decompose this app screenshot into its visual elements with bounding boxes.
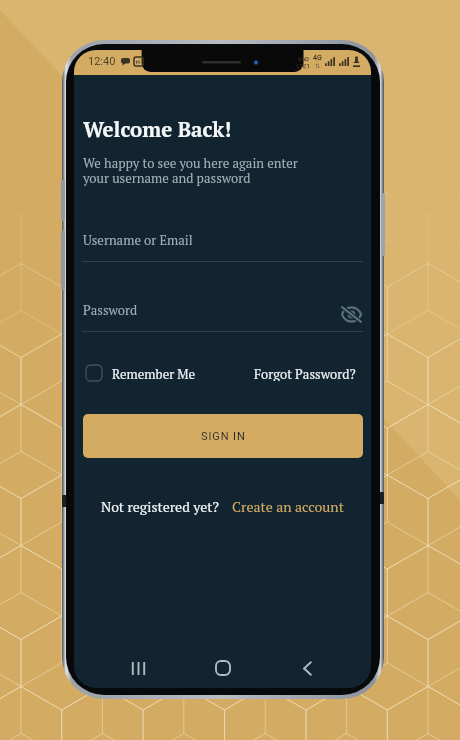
- staticText: SIGN IN: [201, 430, 246, 443]
- button[interactable]: Show password: [341, 304, 362, 325]
- staticText: Create an account: [232, 497, 344, 516]
- button[interactable]: Username or Email: [83, 228, 362, 261]
- button[interactable]: Create an account: [232, 497, 344, 516]
- button[interactable]: Password: [83, 298, 362, 331]
- staticText: LTE1: [297, 62, 310, 69]
- staticText: 12:40: [88, 55, 116, 68]
- button[interactable]: SIGN IN: [83, 414, 363, 458]
- staticText: Username or Email: [83, 231, 193, 248]
- staticText: VoD: [298, 55, 310, 62]
- staticText: Not registered yet?: [101, 497, 219, 516]
- staticText: Forgot Password?: [254, 365, 356, 381]
- button[interactable]: Back: [287, 648, 327, 688]
- button[interactable]: Recents: [118, 648, 158, 688]
- button[interactable]: Home: [203, 648, 243, 688]
- staticText: We happy to see you here again enter you…: [83, 154, 298, 186]
- staticText: Remember Me: [112, 365, 196, 381]
- staticText: 4G: [313, 54, 322, 62]
- button[interactable]: Forgot Password?: [254, 365, 356, 381]
- button[interactable]: Remember Me: [86, 365, 196, 381]
- staticText: ⇅: [315, 62, 321, 69]
- staticText: Welcome Back!: [83, 116, 232, 143]
- staticText: Password: [83, 301, 138, 318]
